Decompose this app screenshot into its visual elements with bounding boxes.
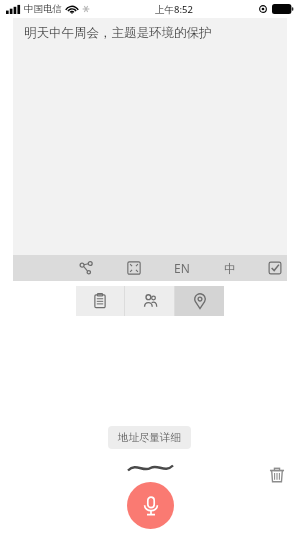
staticText: 地址尽量详细 [118, 431, 181, 444]
button[interactable]: Location [175, 286, 224, 316]
staticText: EN [174, 260, 190, 276]
button[interactable]: 地址尽量详细 [108, 426, 191, 449]
button[interactable]: Delete [262, 460, 292, 490]
button[interactable]: 明天中午周会，主题是环境的保护 [13, 18, 287, 255]
button[interactable]: 中 [214, 255, 246, 281]
button[interactable]: Record voice [127, 482, 174, 529]
staticText: 中国电信 [24, 3, 62, 15]
staticText: 中 [224, 261, 236, 276]
button[interactable]: Share [70, 255, 102, 281]
button[interactable]: EN [166, 255, 198, 281]
button[interactable]: Contacts [125, 286, 174, 316]
button[interactable]: Notes [76, 286, 124, 316]
staticText: 明天中午周会，主题是环境的保护 [24, 25, 212, 41]
button[interactable]: Select all [262, 255, 287, 281]
button[interactable]: Fullscreen [118, 255, 150, 281]
staticText: 上午8:52 [155, 3, 193, 16]
